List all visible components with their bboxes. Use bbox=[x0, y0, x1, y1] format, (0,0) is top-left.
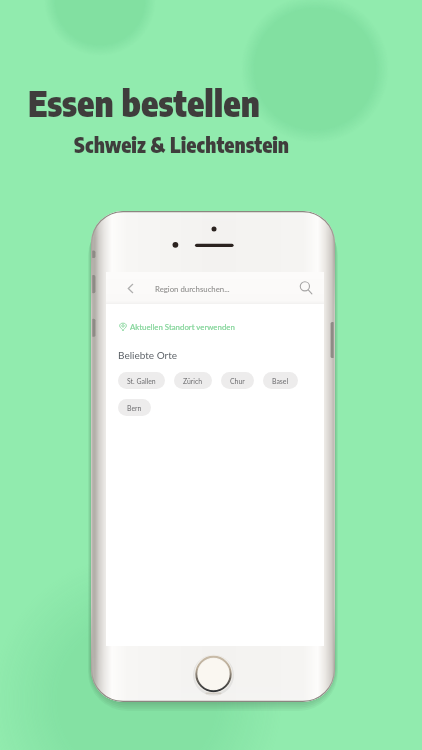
staticText: St. Gallen bbox=[127, 377, 156, 385]
button[interactable]: Back bbox=[114, 272, 146, 304]
staticText: Region durchsuchen... bbox=[155, 284, 230, 293]
button[interactable]: Basel bbox=[263, 372, 298, 389]
button[interactable]: Search bbox=[290, 272, 322, 304]
staticText: Chur bbox=[230, 377, 245, 385]
staticText: Beliebte Orte bbox=[118, 349, 178, 361]
staticText: Schweiz & Liechtenstein bbox=[74, 132, 289, 157]
staticText: Essen bestellen bbox=[28, 81, 261, 125]
button[interactable]: Aktuellen Standort verwenden bbox=[119, 322, 235, 331]
staticText: Basel bbox=[272, 377, 289, 385]
staticText: Aktuellen Standort verwenden bbox=[130, 322, 235, 331]
button[interactable]: Bern bbox=[118, 399, 151, 416]
button[interactable]: Zürich bbox=[174, 372, 212, 389]
staticText: Bern bbox=[127, 404, 142, 412]
button[interactable]: St. Gallen bbox=[118, 372, 165, 389]
staticText: Zürich bbox=[183, 377, 203, 385]
button[interactable]: Chur bbox=[221, 372, 254, 389]
